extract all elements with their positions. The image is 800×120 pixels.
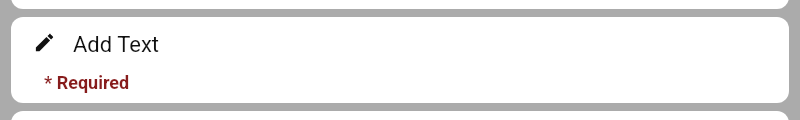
button[interactable]: [11, 0, 789, 9]
other: Edit: [33, 31, 56, 54]
staticText: * Required: [44, 72, 130, 93]
staticText: Add Text: [73, 32, 160, 58]
button[interactable]: Edit: [11, 17, 789, 103]
button[interactable]: [11, 111, 789, 120]
